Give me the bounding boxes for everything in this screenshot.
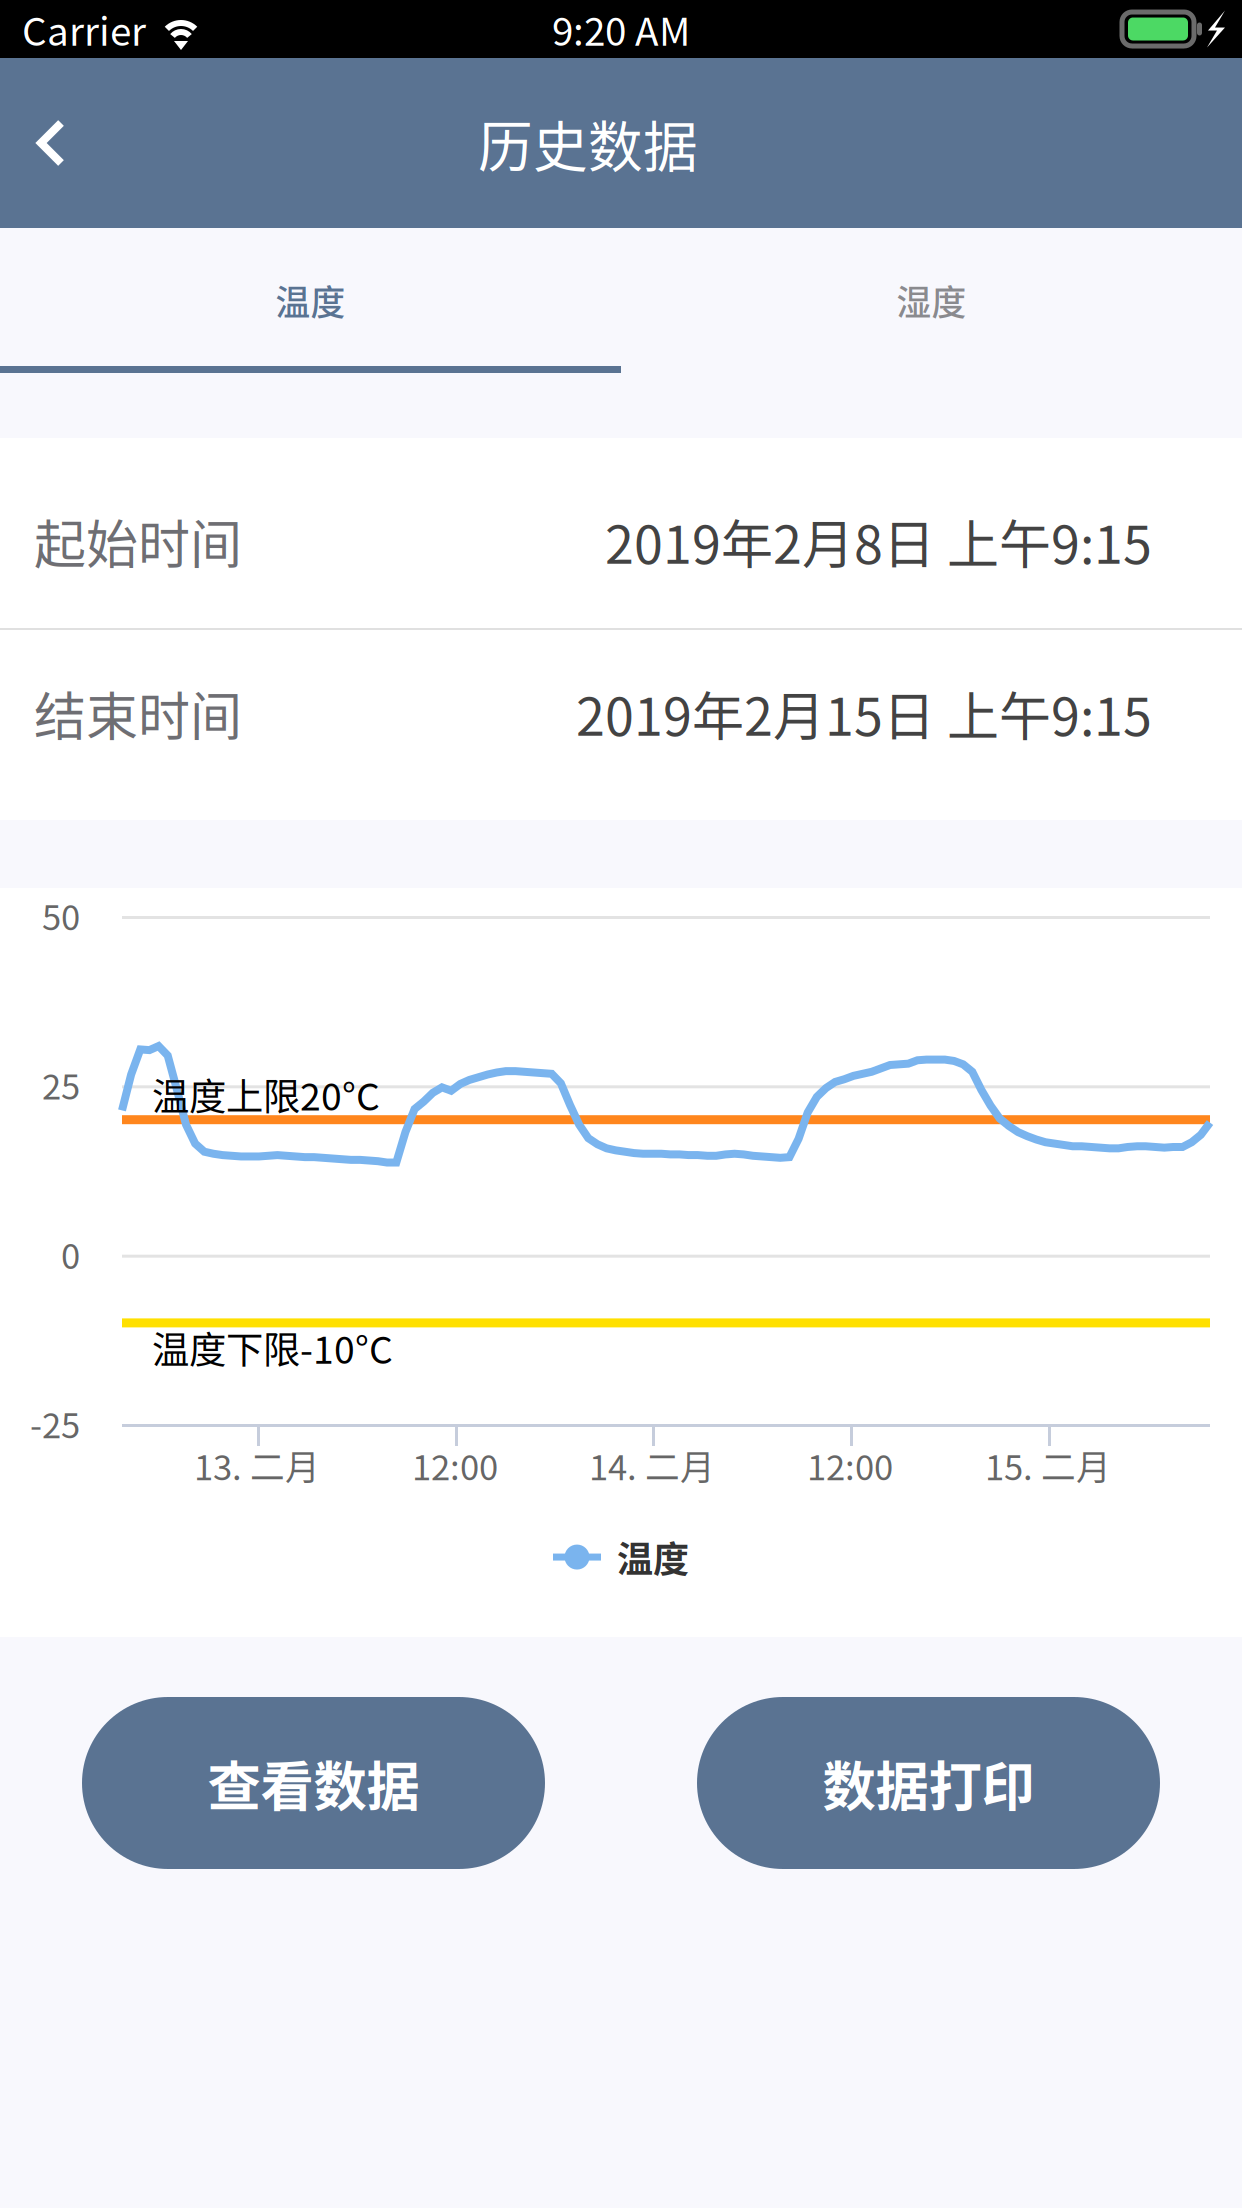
staticText: 温度 xyxy=(617,1531,689,1583)
button[interactable]: 温度 xyxy=(0,228,621,373)
staticText: 25 xyxy=(42,1059,80,1109)
staticText: 查看数据 xyxy=(207,1744,419,1822)
staticText: 0 xyxy=(61,1229,80,1279)
staticText: 温度上限20°C xyxy=(152,1067,380,1121)
staticText: Carrier xyxy=(22,1,146,57)
staticText: 15. 二月 xyxy=(985,1440,1111,1490)
staticText: 12:00 xyxy=(412,1440,498,1490)
staticText: 起始时间 xyxy=(34,503,242,579)
staticText: 12:00 xyxy=(807,1440,893,1490)
staticText: 结束时间 xyxy=(34,675,242,751)
staticText: 温度下限-10°C xyxy=(152,1320,393,1374)
staticText: 2019年2月8日 上午9:15 xyxy=(605,503,1152,579)
staticText: 14. 二月 xyxy=(589,1440,715,1490)
staticText: 9:20 AM xyxy=(552,1,690,57)
staticText: 湿度 xyxy=(896,275,966,326)
button[interactable]: Back xyxy=(0,90,96,196)
staticText: -25 xyxy=(30,1398,80,1448)
staticText: 13. 二月 xyxy=(194,1440,320,1490)
button[interactable]: 查看数据 xyxy=(82,1697,545,1869)
button[interactable]: 数据打印 xyxy=(697,1697,1160,1869)
staticText: 温度 xyxy=(275,275,345,326)
staticText: 数据打印 xyxy=(822,1744,1034,1822)
staticText: 50 xyxy=(42,890,80,940)
button[interactable]: 湿度 xyxy=(621,228,1242,373)
staticText: 2019年2月15日 上午9:15 xyxy=(576,675,1152,751)
staticText: 历史数据 xyxy=(478,103,698,183)
